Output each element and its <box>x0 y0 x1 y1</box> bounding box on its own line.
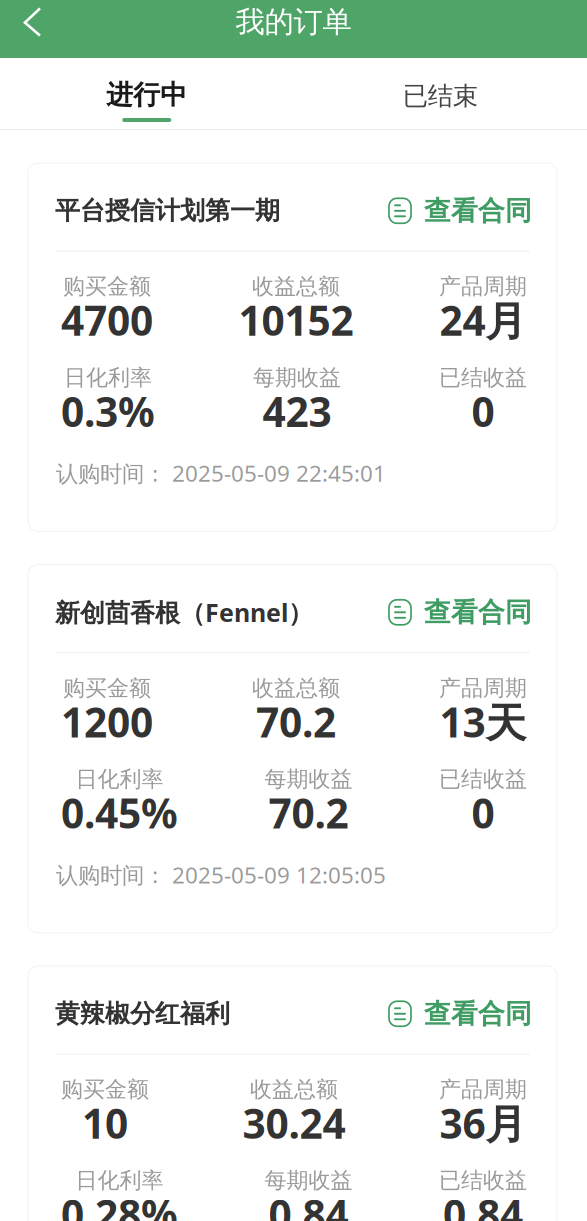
staticText: 0 <box>471 785 494 840</box>
staticText: 36月 <box>439 1095 526 1151</box>
staticText: 查看合同 <box>424 194 532 228</box>
staticText: 0 <box>471 383 494 439</box>
staticText: 0.84 <box>268 1186 348 1221</box>
staticText: 进行中 <box>106 78 187 112</box>
staticText: 收益总额 <box>250 1076 338 1103</box>
staticText: 已结收益 <box>439 1167 527 1194</box>
staticText: 423 <box>262 383 331 439</box>
staticText: 0.45% <box>61 785 178 840</box>
staticText: 产品周期 <box>439 1076 527 1103</box>
staticText: 我的订单 <box>235 3 351 40</box>
staticText: 每期收益 <box>253 364 341 391</box>
staticText: 10 <box>82 1095 128 1151</box>
staticText: 4700 <box>61 292 153 348</box>
staticText: 产品周期 <box>439 674 527 702</box>
staticText: 0.84 <box>443 1186 523 1221</box>
staticText: 已结收益 <box>439 765 527 793</box>
button[interactable]: 查看合同 <box>387 595 532 629</box>
staticText: 24月 <box>439 292 526 348</box>
staticText: 每期收益 <box>264 1167 352 1194</box>
staticText: 每期收益 <box>264 765 352 793</box>
staticText: 新创茴香根（Fennel） <box>55 595 313 629</box>
button[interactable]: 返回 <box>0 7 45 51</box>
button[interactable]: 已结束 <box>293 58 587 129</box>
staticText: 查看合同 <box>424 595 532 629</box>
staticText: 黄辣椒分红福利 <box>55 998 230 1029</box>
button[interactable]: 查看合同 <box>387 194 532 228</box>
button[interactable]: 进行中 <box>0 58 293 129</box>
staticText: 收益总额 <box>252 674 340 702</box>
staticText: 收益总额 <box>252 273 340 300</box>
staticText: 13天 <box>439 694 526 749</box>
staticText: 70.2 <box>256 694 336 749</box>
staticText: 购买金额 <box>63 273 151 300</box>
staticText: 认购时间： 2025-05-09 22:45:01 <box>56 458 386 488</box>
staticText: 认购时间： 2025-05-09 12:05:05 <box>56 859 386 890</box>
staticText: 70.2 <box>268 785 348 840</box>
staticText: 购买金额 <box>61 1076 149 1103</box>
staticText: 0.3% <box>61 383 155 439</box>
staticText: 平台授信计划第一期 <box>55 195 280 226</box>
staticText: 产品周期 <box>439 273 527 300</box>
staticText: 查看合同 <box>424 997 532 1031</box>
staticText: 已结束 <box>403 80 478 112</box>
staticText: 日化利率 <box>75 765 163 793</box>
staticText: 1200 <box>61 694 153 749</box>
staticText: 已结收益 <box>439 364 527 391</box>
button[interactable]: 查看合同 <box>387 997 532 1031</box>
staticText: 日化利率 <box>75 1167 163 1194</box>
staticText: 10152 <box>238 292 353 348</box>
staticText: 30.24 <box>242 1095 345 1151</box>
staticText: 0.28% <box>61 1186 178 1221</box>
staticText: 日化利率 <box>64 364 152 391</box>
staticText: 购买金额 <box>63 674 151 702</box>
